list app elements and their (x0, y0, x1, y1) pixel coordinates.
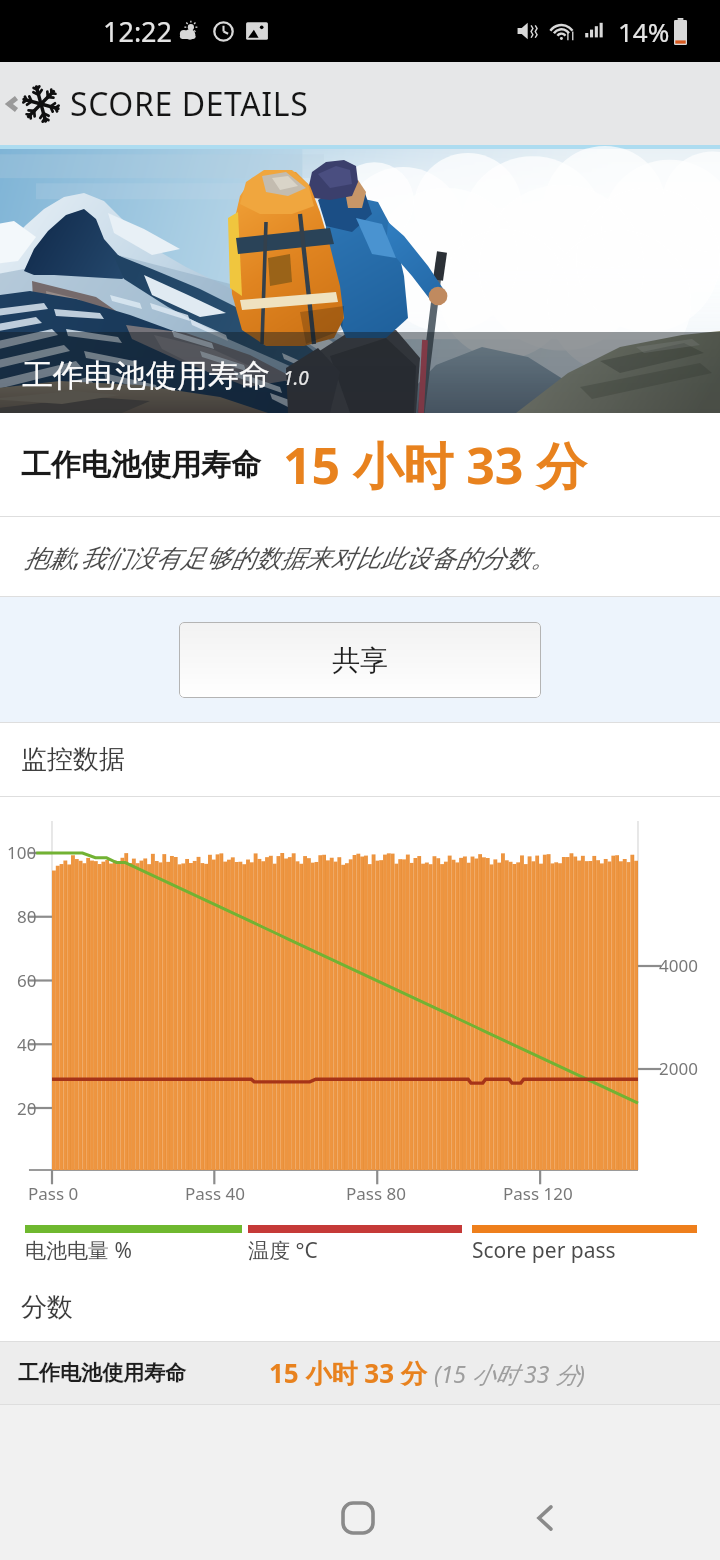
button[interactable]: 共享 (179, 622, 541, 698)
staticText: 15 小时 33 分 (283, 431, 587, 499)
staticText: Pass 80 (346, 1182, 406, 1205)
staticText: (15 小时 33 分) (434, 1358, 585, 1389)
button[interactable]: Back to score details (0, 62, 720, 145)
staticText: Pass 120 (503, 1182, 573, 1205)
staticText: 12:22 (103, 13, 173, 50)
staticText: 14% (618, 14, 670, 49)
staticText: SCORE DETAILS (70, 82, 309, 126)
button[interactable]: Back (507, 1480, 583, 1556)
staticText: 电池电量 % (25, 1236, 132, 1265)
staticText: 工作电池使用寿命 (22, 356, 270, 395)
staticText: 20 (17, 1097, 37, 1120)
staticText: 2000 (659, 1057, 698, 1080)
staticText: 共享 (332, 643, 388, 678)
button[interactable]: Home (320, 1480, 396, 1556)
staticText: Score per pass (472, 1236, 616, 1265)
staticText: 1.0 (283, 365, 309, 391)
staticText: 4000 (659, 954, 698, 977)
staticText: 分数 (21, 1291, 73, 1324)
staticText: 80 (17, 905, 37, 928)
staticText: 工作电池使用寿命 (21, 446, 261, 484)
staticText: 15 小时 33 分 (269, 1355, 427, 1391)
staticText: 工作电池使用寿命 (18, 1360, 186, 1386)
staticText: 40 (17, 1033, 37, 1056)
staticText: 60 (17, 969, 37, 992)
staticText: 温度 °C (248, 1236, 318, 1265)
staticText: 抱歉,我们没有足够的数据来对比此设备的分数。 (24, 540, 556, 574)
staticText: 100 (7, 841, 37, 864)
button[interactable]: 工作电池使用寿命 (0, 1342, 720, 1404)
staticText: Pass 40 (185, 1182, 245, 1205)
staticText: 监控数据 (21, 743, 125, 776)
staticText: Pass 0 (28, 1182, 79, 1205)
